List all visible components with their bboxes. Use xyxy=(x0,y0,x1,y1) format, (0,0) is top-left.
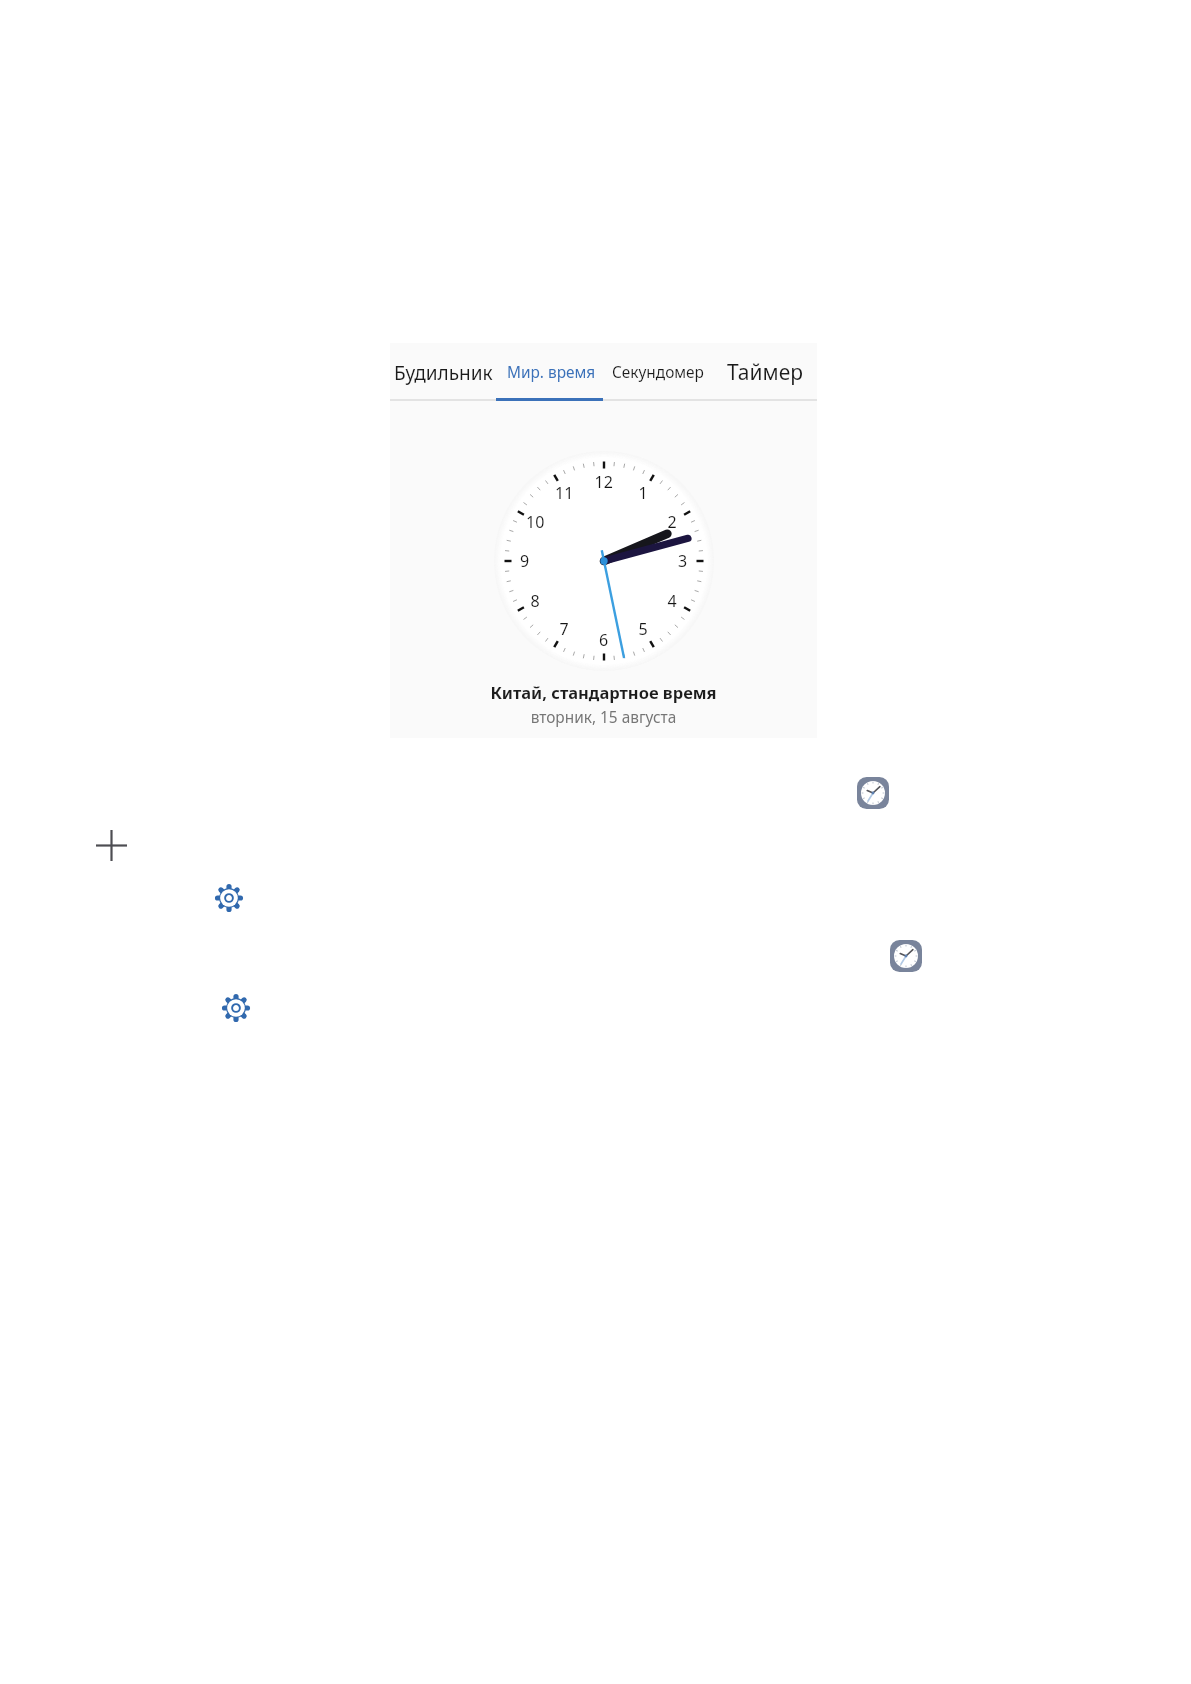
button[interactable]: Clock xyxy=(857,777,889,809)
staticText: Таймер xyxy=(727,358,804,387)
button[interactable]: Settings xyxy=(215,884,243,912)
staticText: Секундомер xyxy=(612,362,704,383)
button[interactable]: Мир. время xyxy=(507,362,596,383)
button[interactable]: Секундомер xyxy=(612,362,704,383)
button[interactable]: Settings xyxy=(222,994,250,1022)
button[interactable]: Будильник xyxy=(394,360,493,386)
button[interactable]: Add xyxy=(96,830,127,861)
staticText: Мир. время xyxy=(507,362,596,383)
staticText: Китай, стандартное время xyxy=(390,681,817,703)
button[interactable]: Таймер xyxy=(727,358,804,387)
button[interactable]: Clock xyxy=(890,940,922,972)
staticText: вторник, 15 августа xyxy=(390,707,817,728)
staticText: Будильник xyxy=(394,360,493,386)
